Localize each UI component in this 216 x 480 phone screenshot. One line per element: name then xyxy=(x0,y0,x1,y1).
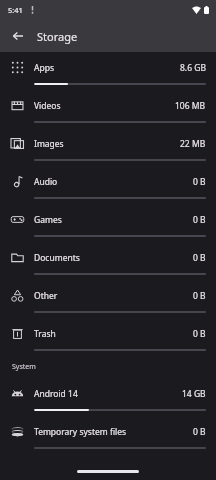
staticText: 8.6 GB xyxy=(180,62,206,74)
staticText: Trash xyxy=(34,328,193,340)
button[interactable]: Documents xyxy=(0,242,216,280)
staticText: Android 14 xyxy=(34,388,182,400)
staticText: 0 B xyxy=(193,328,206,340)
staticText: Temporary system files xyxy=(34,426,193,438)
staticText: Videos xyxy=(34,100,175,112)
staticText: Games xyxy=(34,214,193,226)
staticText: System xyxy=(12,362,36,372)
staticText: Apps xyxy=(34,62,180,74)
button[interactable]: Games xyxy=(0,204,216,242)
staticText: 0 B xyxy=(193,252,206,264)
staticText: 0 B xyxy=(193,176,206,188)
button[interactable]: Back xyxy=(5,23,31,49)
staticText: 5:41 xyxy=(8,5,23,15)
staticText: 106 MB xyxy=(175,100,206,112)
button[interactable]: Audio xyxy=(0,166,216,204)
button[interactable]: Temporary system files xyxy=(0,416,216,454)
staticText: Other xyxy=(34,290,193,302)
staticText: Audio xyxy=(34,176,193,188)
staticText: Storage xyxy=(37,29,78,44)
staticText: 0 B xyxy=(193,290,206,302)
staticText: 22 MB xyxy=(180,138,206,150)
button[interactable]: Android 14 xyxy=(0,378,216,416)
staticText: Documents xyxy=(34,252,193,264)
button[interactable]: Videos xyxy=(0,90,216,128)
staticText: 14 GB xyxy=(182,388,206,400)
button[interactable]: Trash xyxy=(0,318,216,356)
staticText: 0 B xyxy=(193,214,206,226)
button[interactable]: Images xyxy=(0,128,216,166)
button[interactable]: Apps xyxy=(0,52,216,90)
staticText: 0 B xyxy=(193,426,206,438)
staticText: Images xyxy=(34,138,180,150)
button[interactable]: Other xyxy=(0,280,216,318)
